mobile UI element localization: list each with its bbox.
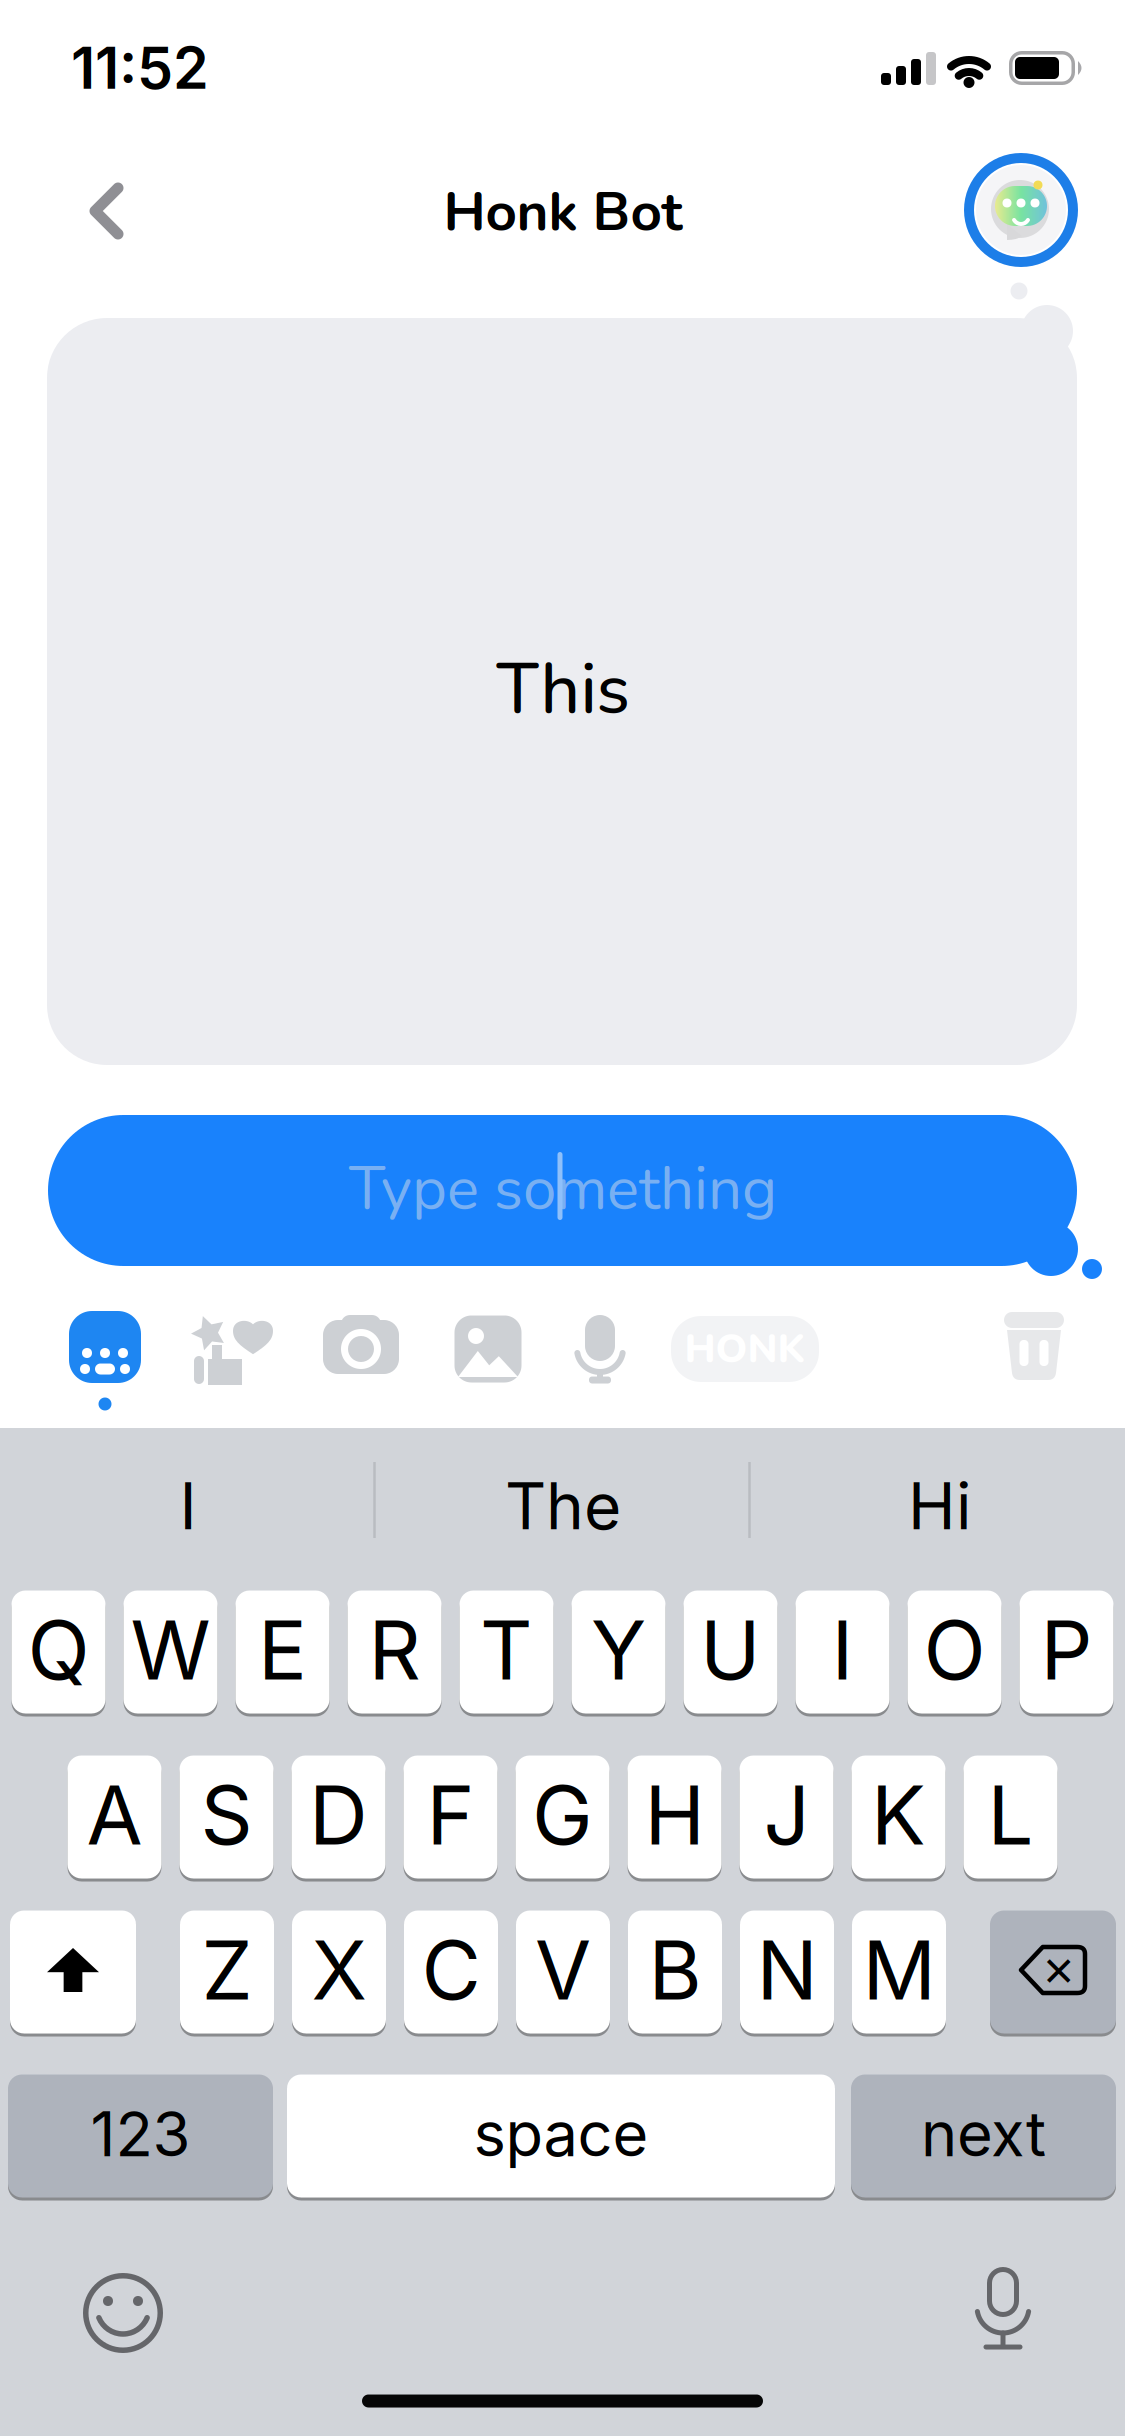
staticText: space — [473, 2097, 648, 2171]
button[interactable]: K — [851, 1753, 945, 1880]
button[interactable]: F — [403, 1753, 497, 1880]
button[interactable]: Emoji — [82, 2272, 164, 2354]
staticText: I — [831, 1601, 853, 1699]
staticText: Honk Bot — [443, 175, 682, 249]
button[interactable]: N — [740, 1908, 834, 2035]
button[interactable]: Back — [74, 180, 138, 242]
staticText: Type something — [349, 1148, 777, 1230]
button[interactable]: V — [516, 1908, 610, 2035]
button[interactable]: H — [627, 1753, 721, 1880]
staticText: I — [179, 1467, 196, 1545]
staticText: 11:52 — [71, 33, 209, 103]
staticText: X — [311, 1921, 366, 2019]
staticText: K — [871, 1766, 926, 1864]
staticText: W — [130, 1601, 210, 1699]
button[interactable]: G — [515, 1753, 609, 1880]
staticText: Hi — [908, 1467, 972, 1545]
staticText: V — [535, 1921, 591, 2019]
button[interactable]: Camera — [321, 1313, 401, 1383]
staticText: D — [309, 1766, 368, 1864]
staticText: G — [532, 1766, 593, 1864]
button[interactable]: E — [235, 1588, 329, 1715]
button[interactable]: X — [292, 1908, 386, 2035]
staticText: A — [86, 1766, 142, 1864]
button[interactable]: Photos — [453, 1314, 523, 1384]
staticText: Y — [591, 1601, 646, 1699]
button[interactable]: J — [739, 1753, 833, 1880]
staticText: U — [700, 1601, 761, 1699]
staticText: F — [426, 1766, 474, 1864]
staticText: L — [987, 1766, 1033, 1864]
staticText: M — [862, 1921, 935, 2019]
button[interactable]: R — [347, 1588, 441, 1715]
button[interactable]: Shift — [10, 1908, 136, 2035]
staticText: O — [923, 1601, 985, 1699]
staticText: N — [756, 1921, 817, 2019]
button[interactable]: Keyboard — [67, 1309, 143, 1385]
button[interactable]: Delete — [990, 1908, 1116, 2035]
staticText: P — [1040, 1601, 1092, 1699]
button[interactable]: 123 — [8, 2072, 273, 2199]
button[interactable]: Honk Bot profile — [964, 153, 1078, 267]
staticText: J — [763, 1766, 809, 1864]
button[interactable]: P — [1019, 1588, 1113, 1715]
button[interactable]: W — [123, 1588, 217, 1715]
staticText: B — [648, 1921, 701, 2019]
staticText: 123 — [90, 2097, 190, 2171]
staticText: next — [921, 2097, 1046, 2171]
staticText: S — [200, 1766, 252, 1864]
staticText: The — [505, 1467, 621, 1545]
button[interactable]: B — [628, 1908, 722, 2035]
button[interactable]: U — [683, 1588, 777, 1715]
button[interactable]: C — [404, 1908, 498, 2035]
button[interactable]: I — [795, 1588, 889, 1715]
staticText: HONK — [684, 1322, 805, 1376]
staticText: H — [644, 1766, 704, 1864]
button[interactable]: Delete — [1002, 1311, 1066, 1383]
staticText: This — [496, 643, 629, 737]
staticText: T — [480, 1601, 533, 1699]
button[interactable]: Q — [11, 1588, 105, 1715]
button[interactable]: space — [287, 2072, 835, 2199]
staticText: Q — [27, 1601, 89, 1699]
button[interactable]: Y — [571, 1588, 665, 1715]
button[interactable]: Voice message — [568, 1314, 632, 1384]
staticText: × — [1043, 1934, 1074, 2004]
button[interactable]: M — [852, 1908, 946, 2035]
button[interactable]: Hi — [755, 1451, 1125, 1561]
staticText: C — [421, 1921, 480, 2019]
button[interactable]: Magic reactions — [178, 1308, 274, 1388]
button[interactable]: Dictation — [974, 2267, 1032, 2353]
button[interactable]: S — [179, 1753, 273, 1880]
staticText: Z — [201, 1921, 252, 2019]
button[interactable]: I — [3, 1451, 373, 1561]
button[interactable]: L — [963, 1753, 1057, 1880]
staticText: E — [258, 1601, 307, 1699]
button[interactable]: O — [907, 1588, 1001, 1715]
button[interactable]: next — [851, 2072, 1116, 2199]
button[interactable]: T — [459, 1588, 553, 1715]
button[interactable]: The — [378, 1451, 748, 1561]
button[interactable]: Z — [180, 1908, 274, 2035]
button[interactable]: Honk — [671, 1316, 819, 1382]
button[interactable]: A — [67, 1753, 161, 1880]
staticText: R — [368, 1601, 420, 1699]
button[interactable]: D — [291, 1753, 385, 1880]
